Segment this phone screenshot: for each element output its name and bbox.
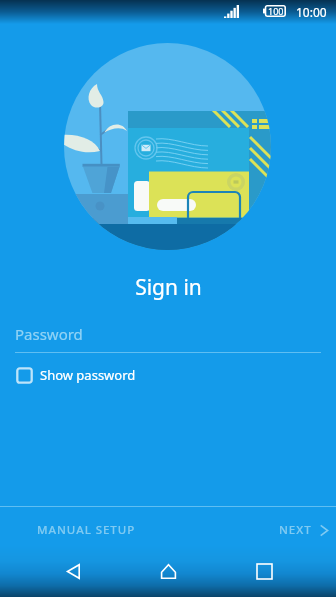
button[interactable]: Back (50, 548, 96, 594)
staticText: NEXT (279, 522, 312, 538)
staticText: MANUAL SETUP (37, 522, 136, 538)
staticText: Show password (40, 366, 136, 384)
button[interactable]: Recents (241, 548, 287, 594)
staticText: 100 (268, 5, 284, 17)
staticText: Password (15, 324, 83, 344)
staticText: Sign in (135, 273, 202, 302)
button[interactable]: Home (145, 548, 191, 594)
staticText: 10:00 (296, 4, 327, 20)
button[interactable]: NEXT (267, 511, 336, 549)
button[interactable]: MANUAL SETUP (0, 511, 148, 549)
button[interactable]: Show password (13, 363, 139, 387)
